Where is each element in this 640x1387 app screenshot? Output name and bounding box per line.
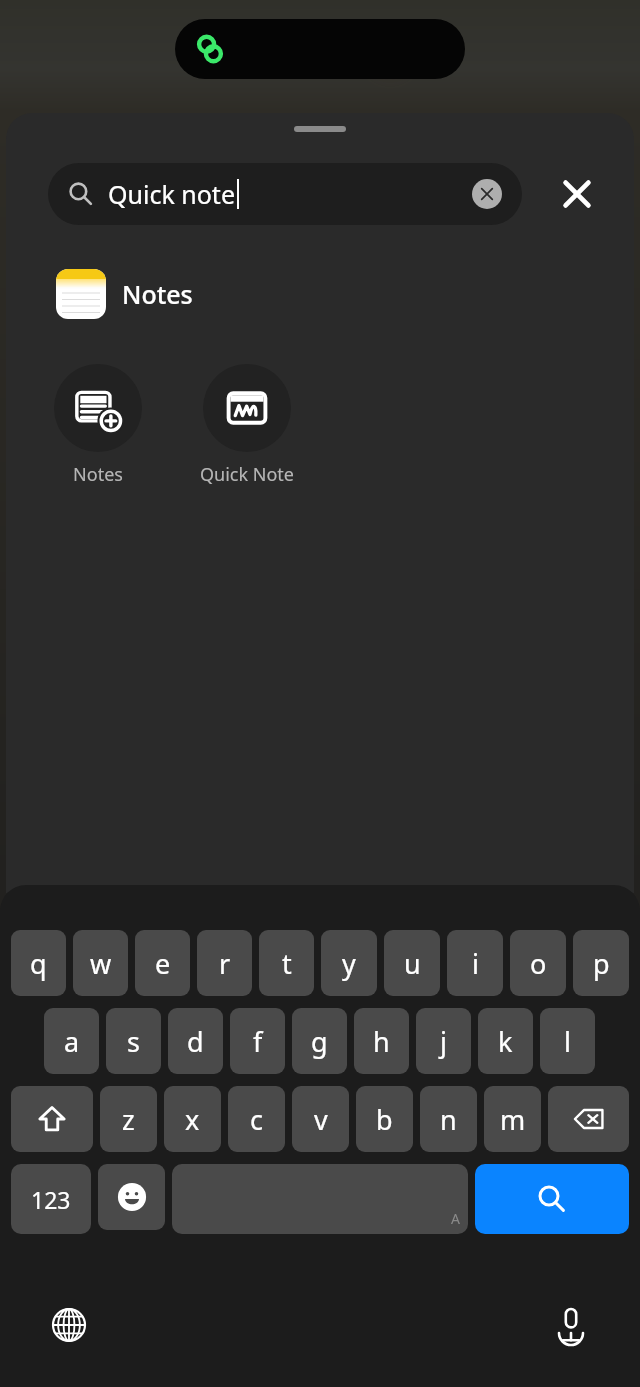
button[interactable]: g [292,1008,347,1074]
button[interactable]: Shift [11,1086,93,1152]
staticText: q [30,945,47,982]
button[interactable]: c [228,1086,285,1152]
staticText: Quick note [108,177,235,211]
staticText: n [440,1101,457,1138]
button[interactable]: d [168,1008,223,1074]
staticText: x [185,1101,200,1138]
staticText: u [404,945,421,982]
button[interactable]: w [73,930,128,996]
button[interactable]: Change keyboard language [38,1294,100,1356]
button[interactable]: Notes [56,269,610,319]
button[interactable]: e [135,930,190,996]
button[interactable]: Notes [54,364,142,487]
staticText: p [593,945,610,982]
button[interactable]: Space [172,1164,468,1234]
button[interactable]: o [510,930,566,996]
staticText: s [127,1023,140,1060]
staticText: m [500,1101,526,1138]
button[interactable]: k [478,1008,533,1074]
button[interactable]: r [197,930,252,996]
staticText: h [373,1023,390,1060]
staticText: 123 [31,1184,71,1215]
staticText: b [376,1101,393,1138]
staticText: o [530,945,547,982]
staticText: w [90,945,112,982]
button[interactable]: f [230,1008,285,1074]
button[interactable]: h [354,1008,409,1074]
staticText: v [314,1101,328,1138]
button[interactable]: j [416,1008,471,1074]
staticText: a [64,1023,80,1060]
button[interactable]: u [384,930,440,996]
button[interactable]: s [106,1008,161,1074]
staticText: j [440,1023,447,1060]
button[interactable]: q [11,930,66,996]
button[interactable]: Voice input [540,1294,602,1356]
staticText: c [250,1101,263,1138]
button[interactable]: t [259,930,314,996]
staticText: k [498,1023,513,1060]
staticText: Notes [122,277,193,311]
button[interactable]: Clear text [472,179,502,209]
button[interactable]: Backspace [548,1086,629,1152]
staticText: i [472,945,479,982]
button[interactable]: n [420,1086,477,1152]
button[interactable]: m [484,1086,541,1152]
staticText: g [311,1023,328,1060]
button[interactable]: i [447,930,503,996]
staticText: r [219,945,231,982]
button[interactable]: v [292,1086,349,1152]
staticText: l [564,1023,571,1060]
button[interactable]: 123 [11,1164,91,1234]
staticText: Notes [73,462,123,487]
staticText: f [253,1023,263,1060]
button[interactable]: Search [475,1164,629,1234]
button[interactable]: p [573,930,629,996]
button[interactable]: l [540,1008,595,1074]
button[interactable]: y [321,930,377,996]
button[interactable]: Quick note [48,163,522,225]
button[interactable]: Quick Note [200,364,294,487]
button[interactable]: x [164,1086,221,1152]
staticText: d [187,1023,204,1060]
button[interactable]: z [100,1086,157,1152]
staticText: y [342,945,356,982]
staticText: t [282,945,292,982]
staticText: Quick Note [200,462,294,487]
button[interactable]: a [44,1008,99,1074]
button[interactable]: b [356,1086,413,1152]
button[interactable]: Close search [542,159,612,229]
staticText: A [451,1209,460,1228]
button[interactable]: Emoji [98,1164,165,1230]
staticText: e [155,945,171,982]
staticText: z [122,1101,135,1138]
